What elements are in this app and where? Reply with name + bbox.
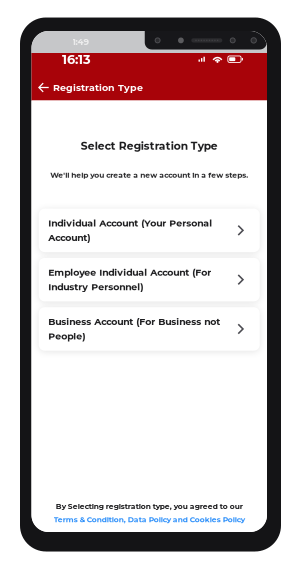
staticText: 16:13 xyxy=(62,52,91,67)
staticText: By Selecting registration type, you agre… xyxy=(56,502,243,511)
staticText: Select Registration Type xyxy=(81,139,218,152)
button[interactable]: Employee Individual Account (For xyxy=(39,258,260,301)
staticText: People) xyxy=(48,331,85,342)
staticText: 1:49 xyxy=(72,37,89,47)
button[interactable]: Back xyxy=(33,77,55,97)
button[interactable]: Terms & Condition, Data Policy and Cooki… xyxy=(54,515,245,524)
staticText: Industry Personnel) xyxy=(48,281,143,293)
staticText: Terms & Condition, Data Policy and Cooki… xyxy=(54,515,245,524)
staticText: We'll help you create a new account in a… xyxy=(50,170,248,180)
button[interactable]: Registration Type xyxy=(53,77,148,97)
staticText: Business Account (For Business not xyxy=(48,316,220,327)
staticText: Account) xyxy=(48,232,90,243)
button[interactable]: Business Account (For Business not xyxy=(39,307,260,351)
staticText: Registration Type xyxy=(53,82,143,93)
staticText: Employee Individual Account (For xyxy=(48,267,211,278)
staticText: Individual Account (Your Personal xyxy=(48,217,212,229)
button[interactable]: Individual Account (Your Personal xyxy=(39,209,260,252)
